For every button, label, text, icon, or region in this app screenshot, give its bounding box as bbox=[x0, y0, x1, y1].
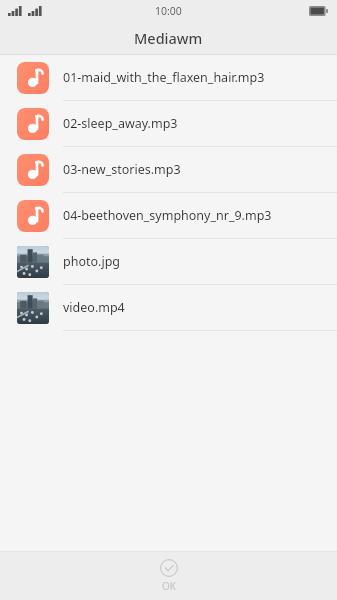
button[interactable]: 02-sleep_away.mp3 bbox=[0, 101, 337, 147]
staticText: 03-new_stories.mp3 bbox=[63, 161, 181, 178]
staticText: 10:00 bbox=[155, 4, 182, 18]
button[interactable]: 03-new_stories.mp3 bbox=[0, 147, 337, 193]
button[interactable]: video.mp4 bbox=[0, 285, 337, 331]
button[interactable]: photo.jpg bbox=[0, 239, 337, 285]
button[interactable]: 04-beethoven_symphony_nr_9.mp3 bbox=[0, 193, 337, 239]
staticText: photo.jpg bbox=[63, 253, 121, 270]
staticText: 04-beethoven_symphony_nr_9.mp3 bbox=[63, 207, 272, 224]
staticText: 01-maid_with_the_flaxen_hair.mp3 bbox=[63, 69, 265, 86]
staticText: video.mp4 bbox=[63, 299, 125, 316]
staticText: Mediawm bbox=[134, 28, 203, 48]
staticText: 02-sleep_away.mp3 bbox=[63, 115, 178, 132]
button[interactable]: 01-maid_with_the_flaxen_hair.mp3 bbox=[0, 55, 337, 101]
staticText: OK bbox=[162, 579, 176, 593]
